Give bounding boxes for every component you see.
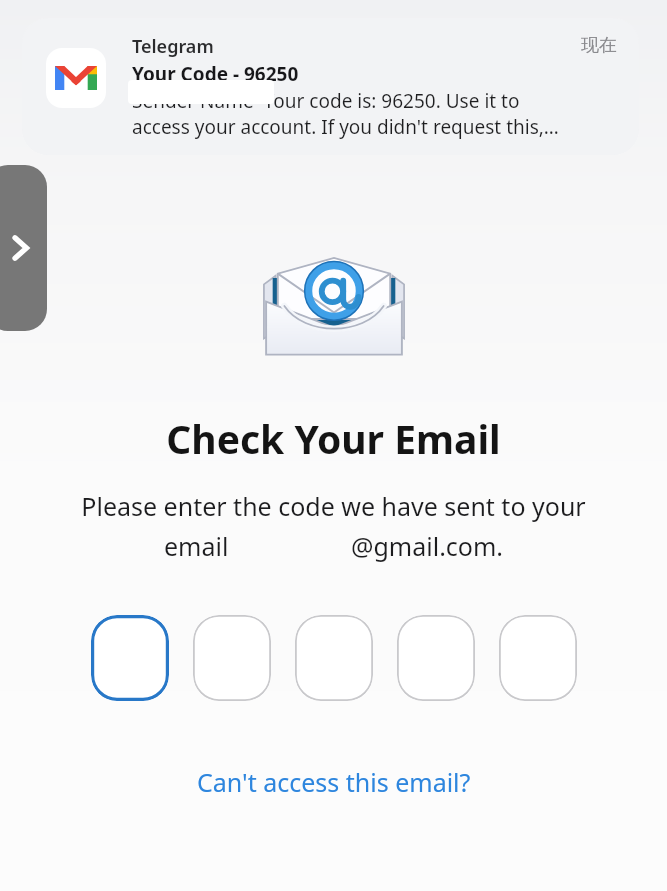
button[interactable]: Code digit field <box>397 615 475 701</box>
staticText: @gmail.com. <box>351 529 504 563</box>
staticText: Can't access this email? <box>197 765 471 799</box>
button[interactable]: Telegram <box>22 18 639 155</box>
staticText: Sender Name Your code is: 96250. Use it … <box>132 88 559 140</box>
staticText: Your Code - 96250 <box>132 61 299 87</box>
staticText: Check Your Email <box>166 412 501 465</box>
staticText: Please enter the code we have sent to yo… <box>81 489 586 523</box>
button[interactable]: Code digit field <box>499 615 577 701</box>
button[interactable]: Code digit field <box>193 615 271 701</box>
button[interactable]: Expand panel <box>0 165 47 331</box>
button[interactable]: Can't access this email? <box>187 759 481 805</box>
button[interactable]: Code digit field <box>295 615 373 701</box>
staticText: email <box>164 529 229 563</box>
staticText: 现在 <box>581 34 617 57</box>
button[interactable]: Code digit field <box>91 615 169 701</box>
staticText: Telegram <box>132 34 214 59</box>
